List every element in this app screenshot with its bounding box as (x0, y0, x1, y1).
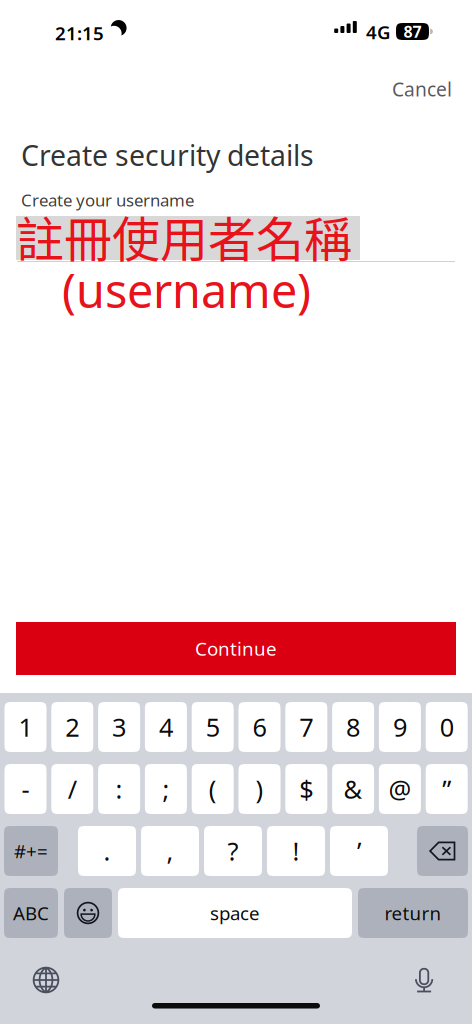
staticText: return (384, 901, 441, 925)
button[interactable]: ABC (4, 888, 58, 938)
button[interactable]: & (332, 764, 374, 814)
button[interactable]: Emoji keyboard (64, 888, 112, 938)
staticText: space (210, 901, 260, 925)
staticText: 4 (159, 710, 173, 744)
button[interactable]: 4 (145, 702, 187, 752)
button[interactable]: . (78, 826, 136, 876)
button[interactable]: Delete (417, 826, 468, 876)
staticText: 2 (65, 710, 79, 744)
staticText: & (344, 772, 363, 806)
button[interactable]: 1 (4, 702, 46, 752)
button[interactable]: 8 (332, 702, 374, 752)
button[interactable]: ; (145, 764, 187, 814)
staticText: ; (162, 772, 169, 806)
button[interactable]: Next keyboard (24, 960, 68, 1000)
staticText: Continue (195, 636, 277, 661)
button[interactable]: ) (238, 764, 280, 814)
button[interactable]: 3 (98, 702, 140, 752)
staticText: ! (292, 834, 299, 868)
staticText: 5 (206, 710, 220, 744)
button[interactable]: 5 (192, 702, 234, 752)
button[interactable]: 0 (426, 702, 468, 752)
staticText: Create security details (21, 136, 314, 174)
button[interactable]: ! (267, 826, 325, 876)
staticText: 3 (112, 710, 126, 744)
button[interactable]: #+= (4, 826, 58, 876)
staticText: ( (209, 772, 217, 806)
button[interactable]: / (51, 764, 93, 814)
staticText: / (68, 772, 77, 806)
button[interactable]: $ (285, 764, 327, 814)
staticText: Cancel (392, 76, 452, 102)
staticText: 0 (440, 710, 454, 744)
staticText: 9 (393, 710, 407, 744)
staticText: 8 (346, 710, 360, 744)
button[interactable]: ( (192, 764, 234, 814)
button[interactable]: return (358, 888, 468, 938)
staticText: ABC (13, 901, 49, 925)
button[interactable]: Continue (16, 622, 456, 675)
staticText: - (21, 772, 29, 806)
staticText: , (166, 834, 173, 868)
button[interactable]: : (98, 764, 140, 814)
staticText: 21:15 (55, 21, 104, 45)
button[interactable]: ’ (330, 826, 388, 876)
button[interactable]: - (4, 764, 46, 814)
button[interactable]: Dictation (402, 960, 446, 1000)
staticText: 1 (18, 710, 32, 744)
staticText: $ (299, 772, 313, 806)
staticText: 4G (366, 20, 391, 44)
staticText: Create your username (21, 189, 194, 211)
staticText: ’ (357, 834, 361, 868)
button[interactable]: ? (204, 826, 262, 876)
staticText: @ (388, 772, 411, 806)
staticText: . (103, 834, 110, 868)
staticText: 6 (252, 710, 266, 744)
button[interactable]: 2 (51, 702, 93, 752)
button[interactable]: 6 (238, 702, 280, 752)
button[interactable]: 7 (285, 702, 327, 752)
staticText: (username) (62, 259, 311, 321)
staticText: 註冊使用者名稱 (16, 201, 352, 271)
staticText: 7 (299, 710, 313, 744)
staticText: 87 (403, 21, 421, 42)
button[interactable]: , (141, 826, 199, 876)
button[interactable]: Cancel (384, 69, 460, 109)
staticText: #+= (14, 839, 48, 863)
staticText: ) (255, 772, 263, 806)
staticText: ? (227, 834, 238, 868)
button[interactable]: @ (379, 764, 421, 814)
staticText: ” (442, 772, 451, 806)
button[interactable]: space (118, 888, 352, 938)
button[interactable]: ” (426, 764, 468, 814)
button[interactable]: 9 (379, 702, 421, 752)
staticText: : (116, 772, 123, 806)
